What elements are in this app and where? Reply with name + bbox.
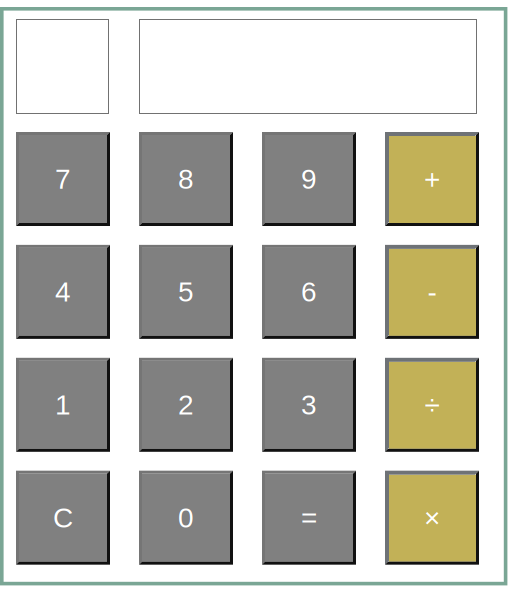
button[interactable]: Zero	[139, 471, 233, 565]
button[interactable]: Nine	[262, 132, 356, 226]
button[interactable]: Add	[385, 132, 479, 226]
button[interactable]: Subtract	[385, 245, 479, 339]
staticText: =	[301, 502, 317, 533]
button[interactable]: Multiply	[385, 471, 479, 565]
button[interactable]: Three	[262, 358, 356, 452]
button[interactable]: Six	[262, 245, 356, 339]
staticText: -	[427, 276, 436, 308]
staticText: 2	[178, 389, 194, 420]
staticText: ×	[424, 502, 440, 533]
staticText: 3	[301, 389, 317, 420]
staticText: 0	[178, 502, 194, 533]
button[interactable]: One	[16, 358, 110, 452]
button[interactable]: Two	[139, 358, 233, 452]
staticText: 7	[55, 163, 71, 195]
button[interactable]: Five	[139, 245, 233, 339]
button[interactable]: Four	[16, 245, 110, 339]
staticText: ÷	[424, 389, 439, 420]
button[interactable]: Equals	[262, 471, 356, 565]
button[interactable]: Seven	[16, 132, 110, 226]
button[interactable]: Eight	[139, 132, 233, 226]
staticText: 5	[178, 276, 194, 308]
button[interactable]: Divide	[385, 358, 479, 452]
staticText: +	[424, 163, 440, 195]
button[interactable]: Clear	[16, 471, 110, 565]
staticText: 4	[55, 276, 71, 308]
staticText: 8	[178, 163, 194, 195]
staticText: 6	[301, 276, 317, 308]
staticText: C	[53, 502, 73, 533]
staticText: 9	[301, 163, 317, 195]
staticText: 1	[55, 389, 71, 420]
